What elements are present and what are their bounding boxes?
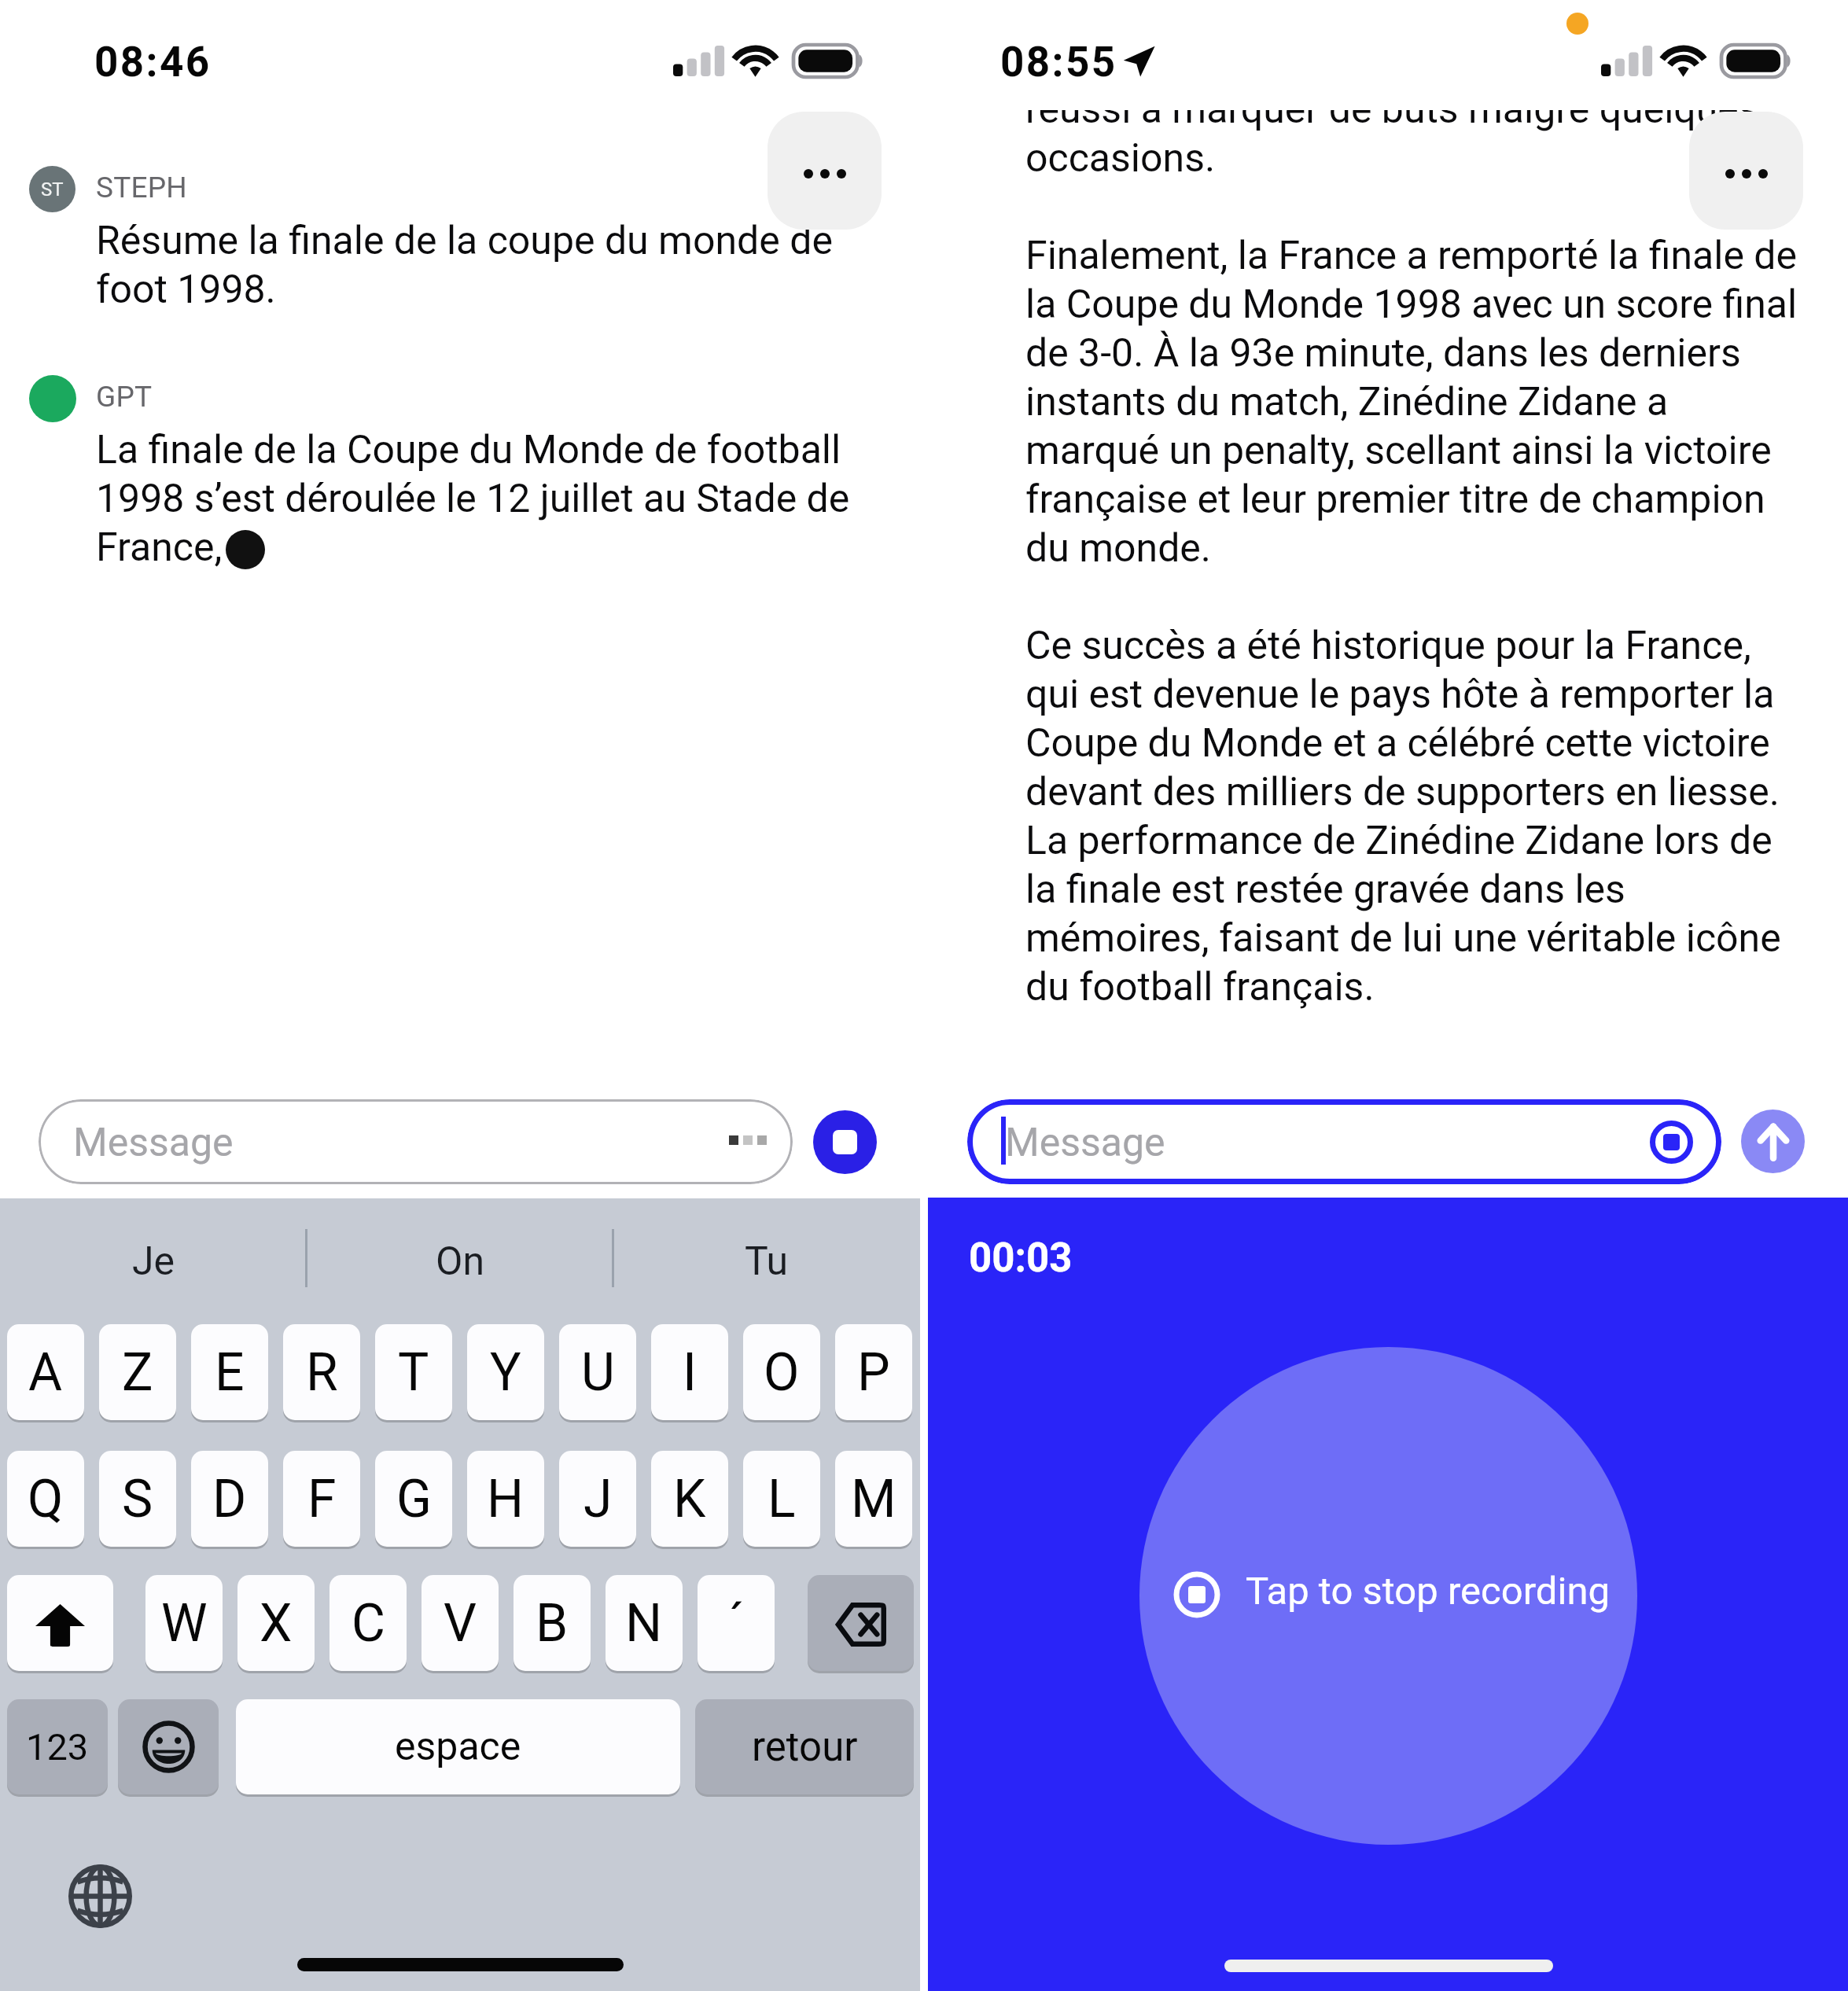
button[interactable]: J: [559, 1451, 636, 1549]
staticText: N: [625, 1593, 663, 1654]
staticText: Message: [73, 1120, 234, 1166]
button[interactable]: More options: [1689, 112, 1803, 230]
staticText: 00:03: [969, 1235, 1073, 1282]
button[interactable]: K: [651, 1451, 728, 1549]
button[interactable]: U: [559, 1324, 636, 1422]
button[interactable]: Send: [1741, 1110, 1805, 1173]
staticText: K: [673, 1469, 706, 1529]
button[interactable]: D: [191, 1451, 268, 1549]
button[interactable]: T: [375, 1324, 452, 1422]
staticText: du football français.: [1025, 964, 1375, 1010]
staticText: Tap to stop recording: [1246, 1569, 1610, 1614]
staticText: Ce succès a été historique pour la Franc…: [1025, 623, 1751, 669]
button[interactable]: L: [743, 1451, 820, 1549]
staticText: A: [28, 1342, 63, 1403]
button[interactable]: espace: [236, 1699, 680, 1797]
button[interactable]: M: [835, 1451, 912, 1549]
button[interactable]: E: [191, 1324, 268, 1422]
staticText: 08:46: [94, 38, 212, 86]
button[interactable]: More options: [768, 112, 882, 230]
staticText: G: [396, 1469, 432, 1529]
button[interactable]: W: [145, 1575, 223, 1673]
staticText: I: [683, 1342, 697, 1403]
staticText: STEPH: [96, 171, 187, 204]
staticText: espace: [395, 1724, 521, 1770]
staticText: T: [398, 1342, 429, 1403]
staticText: C: [352, 1593, 385, 1654]
button[interactable]: G: [375, 1451, 452, 1549]
staticText: F: [307, 1469, 337, 1529]
staticText: B: [536, 1593, 569, 1654]
staticText: de 3-0. À la 93e minute, dans les dernie…: [1025, 330, 1741, 377]
button[interactable]: Q: [7, 1451, 84, 1549]
button[interactable]: Emoji: [118, 1699, 219, 1797]
button[interactable]: 123: [7, 1699, 108, 1797]
staticText: la Coupe du Monde 1998 avec un score fin…: [1025, 282, 1798, 328]
button[interactable]: ´: [698, 1575, 775, 1673]
staticText: 1998 s’est déroulée le 12 juillet au Sta…: [96, 476, 850, 522]
staticText: E: [215, 1342, 245, 1403]
staticText: U: [581, 1342, 615, 1403]
staticText: 08:55: [1000, 38, 1117, 86]
button[interactable]: S: [99, 1451, 176, 1549]
staticText: W: [161, 1593, 208, 1654]
staticText: Q: [28, 1469, 64, 1529]
staticText: réussi à marquer de buts malgré quelques: [1025, 86, 1759, 133]
staticText: France,: [96, 524, 223, 571]
button[interactable]: C: [329, 1575, 407, 1673]
staticText: française et leur premier titre de champ…: [1025, 477, 1765, 523]
button[interactable]: F: [283, 1451, 360, 1549]
button[interactable]: V: [422, 1575, 499, 1673]
staticText: V: [444, 1593, 477, 1654]
staticText: qui est devenue le pays hôte à remporter…: [1025, 672, 1775, 718]
staticText: Tu: [745, 1238, 789, 1285]
staticText: du monde.: [1025, 525, 1212, 572]
button[interactable]: Shift: [7, 1575, 113, 1673]
button[interactable]: R: [283, 1324, 360, 1422]
staticText: J: [583, 1469, 613, 1529]
staticText: X: [260, 1593, 293, 1654]
staticText: GPT: [96, 380, 153, 414]
button[interactable]: H: [467, 1451, 544, 1549]
staticText: devant des milliers de supporters en lie…: [1025, 769, 1780, 815]
button[interactable]: X: [237, 1575, 315, 1673]
staticText: On: [436, 1238, 485, 1285]
staticText: ´: [728, 1593, 745, 1654]
button[interactable]: Y: [467, 1324, 544, 1422]
button[interactable]: A: [7, 1324, 84, 1422]
button[interactable]: Backspace: [808, 1575, 914, 1673]
staticText: L: [768, 1469, 796, 1529]
staticText: mémoires, faisant de lui une véritable i…: [1025, 915, 1781, 962]
button[interactable]: Stop recording: [813, 1110, 877, 1174]
button[interactable]: P: [835, 1324, 912, 1422]
staticText: occasions.: [1025, 135, 1216, 182]
staticText: Y: [490, 1342, 521, 1403]
button[interactable]: Change keyboard: [68, 1864, 132, 1928]
staticText: H: [487, 1469, 525, 1529]
button[interactable]: N: [606, 1575, 683, 1673]
staticText: P: [857, 1342, 890, 1403]
button[interactable]: I: [651, 1324, 728, 1422]
button[interactable]: Je: [0, 1198, 307, 1324]
button[interactable]: Tu: [613, 1198, 920, 1324]
staticText: M: [851, 1469, 896, 1529]
button[interactable]: Message: [39, 1099, 793, 1184]
button[interactable]: B: [514, 1575, 591, 1673]
staticText: R: [306, 1342, 338, 1403]
staticText: S: [122, 1469, 153, 1529]
staticText: 123: [26, 1725, 89, 1768]
button[interactable]: Z: [99, 1324, 176, 1422]
staticText: marqué un penalty, scellant ainsi la vic…: [1025, 428, 1772, 474]
staticText: la finale est restée gravée dans les: [1025, 867, 1625, 913]
button[interactable]: Tap to stop recording: [928, 1198, 1848, 1991]
button[interactable]: O: [743, 1324, 820, 1422]
staticText: D: [212, 1469, 247, 1529]
staticText: Coupe du Monde et a célébré cette victoi…: [1025, 720, 1770, 767]
staticText: Z: [122, 1342, 153, 1403]
button[interactable]: retour: [695, 1699, 914, 1797]
staticText: La finale de la Coupe du Monde de footba…: [96, 427, 841, 473]
staticText: instants du match, Zinédine Zidane a: [1025, 379, 1669, 425]
button[interactable]: Message: [967, 1099, 1721, 1184]
staticText: Résume la finale de la coupe du monde de: [96, 218, 833, 264]
button[interactable]: On: [307, 1198, 613, 1324]
